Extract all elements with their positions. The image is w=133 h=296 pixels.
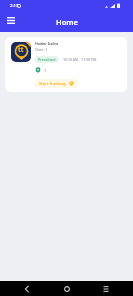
staticText: 1 [44,68,47,73]
button[interactable]: Open navigation menu [0,11,21,32]
staticText: 10:10 AM - 11:58 PM [63,57,97,62]
button[interactable]: tt [5,37,127,92]
button[interactable]: Recent apps [93,281,119,296]
staticText: Home [56,17,78,27]
staticText: Preschool [38,57,56,62]
staticText: tt [18,45,24,54]
button[interactable]: Back [14,281,40,296]
staticText: Haidar Isolva [35,41,59,46]
staticText: Start Tracking [39,81,66,86]
staticText: 2:13 [10,3,19,9]
button[interactable]: Home [54,281,80,296]
staticText: Class : 1 [35,47,48,52]
button[interactable]: Start Tracking [35,79,78,88]
